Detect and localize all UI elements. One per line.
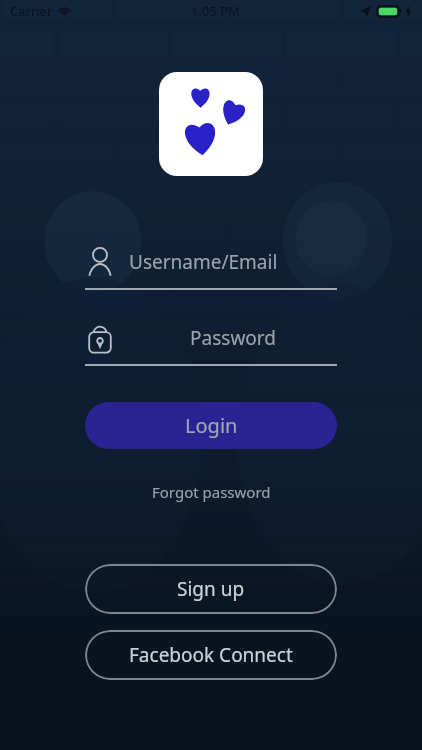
staticText: Password [129,325,337,351]
button[interactable]: Password [85,318,337,366]
button[interactable]: Forgot password [0,482,422,502]
button[interactable]: Username/Email [85,242,337,290]
staticText: Sign up [177,576,245,602]
staticText: Carrier [10,2,53,20]
staticText: 1:05 PM [191,2,240,20]
staticText: Facebook Connect [129,642,293,668]
staticText: Username/Email [129,249,337,275]
staticText: Login [185,412,238,439]
button[interactable]: Login [85,402,337,449]
button[interactable]: Facebook Connect [85,630,337,680]
staticText: Forgot password [152,482,271,502]
button[interactable]: Sign up [85,564,337,614]
